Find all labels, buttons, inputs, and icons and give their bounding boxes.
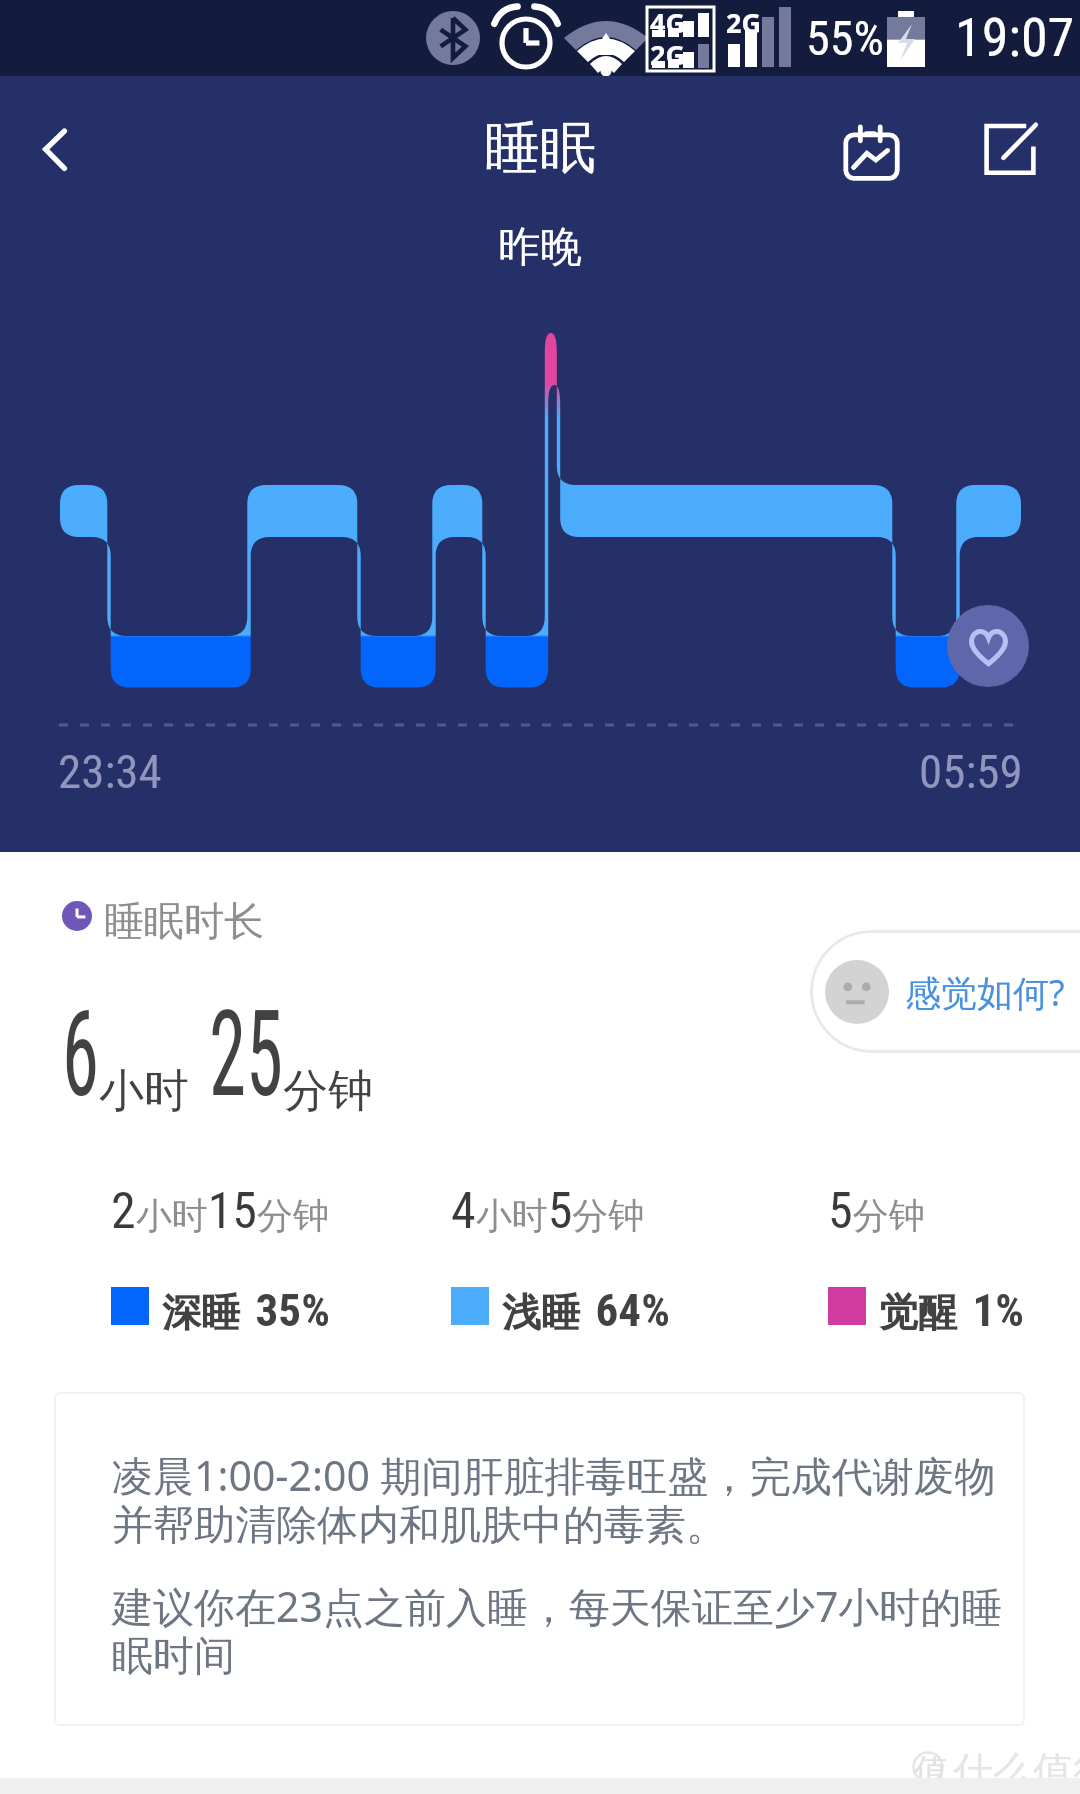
staticText: 4小时5分钟 <box>451 1182 645 1241</box>
staticText: 感觉如何? <box>905 968 1065 1017</box>
button[interactable]: 感觉如何? <box>810 930 1080 1053</box>
staticText: 分钟 <box>283 1063 373 1120</box>
staticText: 小时 <box>99 1063 189 1120</box>
staticText: 55% <box>806 10 884 66</box>
staticText: 2G <box>650 36 685 73</box>
staticText: 深睡 35% <box>162 1284 330 1337</box>
staticText: 2G <box>726 4 761 41</box>
button[interactable]: Back <box>10 104 100 194</box>
staticText: 19:07 <box>955 6 1075 69</box>
staticText: 睡眠时长 <box>104 896 264 946</box>
staticText: 昨晚 <box>498 221 582 274</box>
staticText: 值 <box>914 1750 948 1793</box>
staticText: 4G <box>650 4 685 41</box>
staticText: 05:59 <box>919 744 1023 799</box>
staticText: 25 <box>209 985 283 1124</box>
staticText: 6 <box>62 985 99 1124</box>
staticText: 什么值得买 <box>953 1746 1080 1794</box>
staticText: 2小时15分钟 <box>111 1182 330 1241</box>
staticText: 23:34 <box>58 744 162 799</box>
staticText: 凌晨1:00-2:00 期间肝脏排毒旺盛，完成代谢废物 并帮助清除体内和肌肤中的… <box>112 1447 996 1551</box>
staticText: 建议你在23点之前入睡，每天保证至少7小时的睡 眠时间 <box>112 1578 1003 1682</box>
button[interactable]: Edit <box>965 102 1061 198</box>
staticText: 浅睡 64% <box>502 1284 670 1337</box>
button[interactable]: Favorite <box>947 605 1029 687</box>
staticText: 睡眠 <box>484 113 596 184</box>
button[interactable]: Statistics <box>826 104 922 200</box>
staticText: 5分钟 <box>828 1182 925 1241</box>
staticText: 觉醒 1% <box>879 1284 1025 1337</box>
